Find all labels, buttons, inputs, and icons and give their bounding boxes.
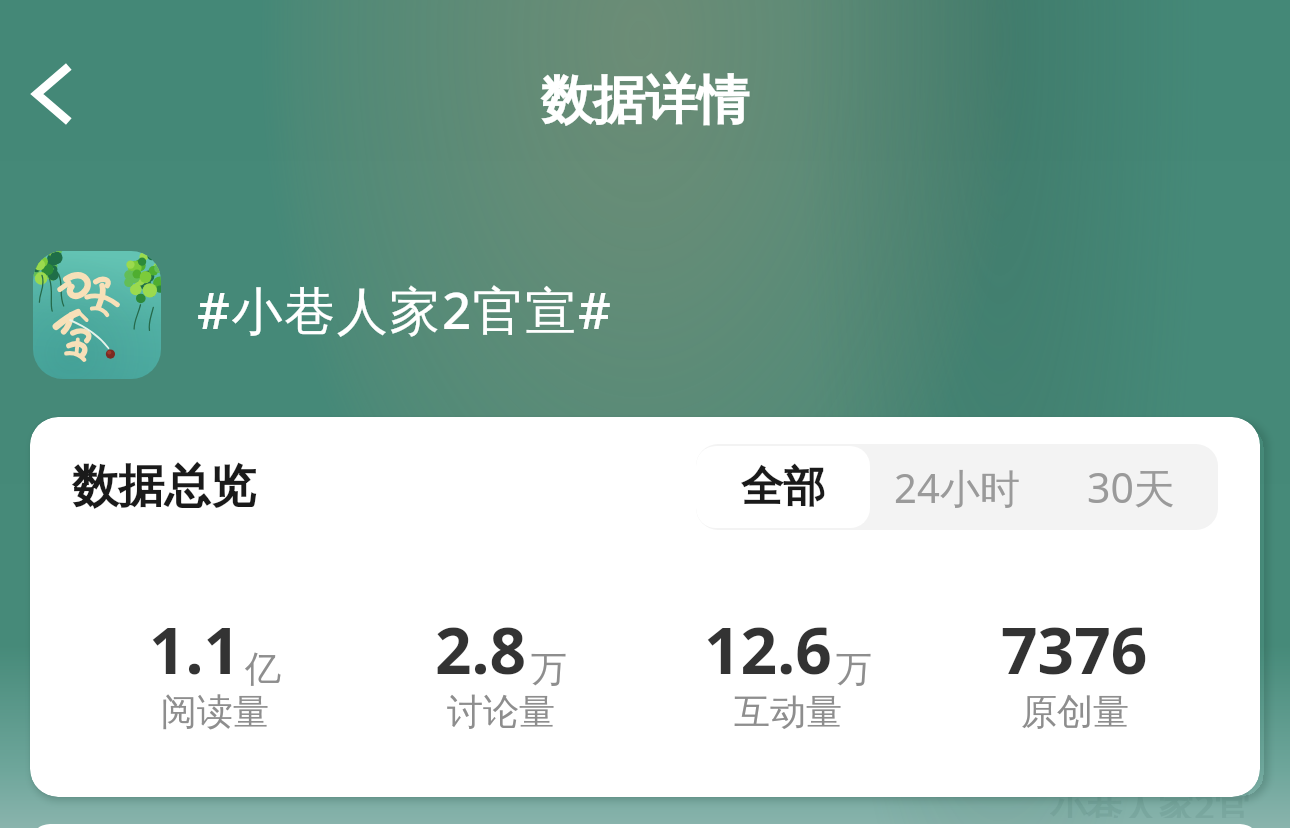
staticText: 数据详情	[0, 68, 1290, 134]
staticText: 亿	[245, 646, 281, 691]
button[interactable]: 2.8	[358, 606, 644, 738]
button[interactable]: Back	[6, 48, 98, 140]
staticText: 7376	[1001, 606, 1148, 693]
button[interactable]: 30天	[1044, 444, 1218, 530]
staticText: 互动量	[734, 689, 842, 734]
other: Topic icon	[33, 251, 161, 379]
staticText: 全部	[741, 461, 825, 514]
button[interactable]: 7376	[931, 606, 1218, 738]
staticText: 30天	[1087, 459, 1175, 515]
staticText: 万	[836, 646, 872, 691]
button[interactable]: 24小时	[870, 444, 1044, 530]
button[interactable]: 1.1	[72, 606, 358, 738]
staticText: 阅读量	[161, 689, 269, 734]
button[interactable]: 全部	[696, 446, 870, 528]
button[interactable]: Topic icon	[33, 251, 613, 379]
staticText: #小巷人家2官宣#	[197, 274, 613, 344]
staticText: 12.6	[704, 606, 832, 693]
staticText: 万	[531, 646, 567, 691]
staticText: 数据总览	[72, 458, 256, 516]
staticText: 24小时	[894, 460, 1020, 515]
staticText: 1.1	[149, 606, 241, 693]
staticText: 2.8	[435, 606, 527, 693]
staticText: 原创量	[1021, 689, 1129, 734]
button[interactable]: 12.6	[644, 606, 931, 738]
staticText: 小巷人家2官	[1050, 782, 1251, 818]
staticText: 讨论量	[447, 689, 555, 734]
